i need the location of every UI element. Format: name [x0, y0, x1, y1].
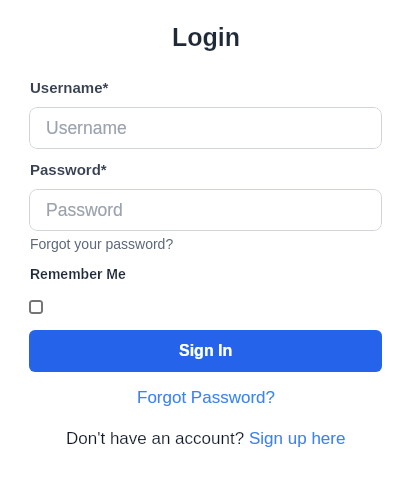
staticText: Login — [172, 23, 241, 51]
button[interactable]: Sign In — [29, 330, 382, 372]
staticText: Password — [46, 200, 123, 220]
staticText: Username* — [30, 79, 109, 96]
button[interactable]: Password — [29, 189, 382, 231]
button[interactable]: Sign up here — [249, 429, 346, 448]
staticText: Sign In — [179, 342, 233, 360]
staticText: Username — [46, 118, 127, 138]
button[interactable]: Forgot your password? — [30, 236, 174, 252]
button[interactable] — [29, 300, 43, 314]
staticText: Don't have an account? — [66, 429, 249, 448]
staticText: Password* — [30, 161, 107, 178]
button[interactable]: Username — [29, 107, 382, 149]
staticText: Remember Me — [30, 266, 126, 282]
button[interactable]: Forgot Password? — [137, 388, 275, 407]
